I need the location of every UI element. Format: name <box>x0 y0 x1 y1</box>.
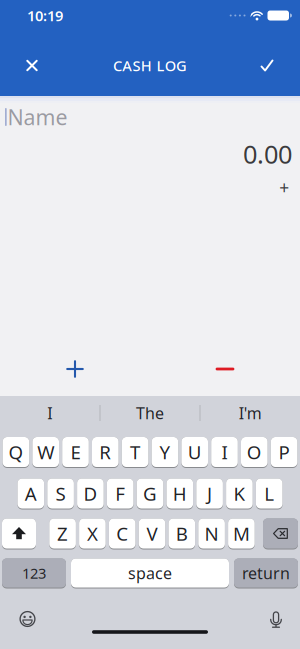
button[interactable]: A <box>17 478 44 509</box>
staticText: L <box>264 481 274 506</box>
staticText: I'm <box>239 402 262 424</box>
button[interactable]: Shift <box>2 518 36 549</box>
button[interactable]: K <box>226 478 253 509</box>
button[interactable]: C <box>109 518 135 549</box>
staticText: Y <box>159 440 170 464</box>
staticText: H <box>173 481 187 506</box>
button[interactable]: Emoji <box>12 604 42 634</box>
button[interactable]: Delete <box>263 518 298 549</box>
staticText: D <box>83 481 97 506</box>
staticText: CASH LOG <box>113 56 187 75</box>
button[interactable]: W <box>32 437 59 468</box>
button[interactable]: R <box>92 437 119 468</box>
button[interactable]: I'm <box>200 396 300 430</box>
staticText: M <box>233 521 250 546</box>
staticText: B <box>176 521 188 546</box>
staticText: T <box>130 440 140 464</box>
staticText: return <box>242 562 290 584</box>
button[interactable]: N <box>198 518 225 549</box>
button[interactable]: P <box>271 437 297 468</box>
staticText: O <box>247 440 262 464</box>
button[interactable]: Save <box>249 43 285 87</box>
button[interactable]: O <box>241 437 268 468</box>
button[interactable]: I <box>211 437 238 468</box>
button[interactable]: S <box>47 478 74 509</box>
staticText: space <box>128 562 172 584</box>
staticText: 123 <box>22 563 46 583</box>
staticText: X <box>87 521 98 546</box>
staticText: Z <box>57 521 68 546</box>
button[interactable]: X <box>79 518 106 549</box>
button[interactable]: H <box>166 478 193 509</box>
staticText: G <box>143 481 157 506</box>
staticText: C <box>116 521 128 546</box>
staticText: V <box>146 521 157 546</box>
button[interactable]: 123 <box>2 558 66 588</box>
button[interactable]: U <box>181 437 208 468</box>
staticText: N <box>205 521 219 546</box>
button[interactable]: J <box>196 478 223 509</box>
staticText: K <box>233 481 245 506</box>
button[interactable]: L <box>256 478 282 509</box>
staticText: R <box>99 440 111 464</box>
staticText: J <box>207 481 212 506</box>
button[interactable]: F <box>107 478 133 509</box>
staticText: E <box>70 440 80 464</box>
button[interactable]: Add amount <box>273 176 295 198</box>
staticText: I <box>47 402 52 424</box>
button[interactable]: The <box>100 396 199 430</box>
button[interactable]: E <box>62 437 89 468</box>
button[interactable]: B <box>168 518 195 549</box>
button[interactable]: Close <box>14 43 50 87</box>
staticText: The <box>136 402 164 424</box>
button[interactable]: V <box>139 518 165 549</box>
button[interactable]: Add income <box>0 339 150 399</box>
button[interactable]: M <box>228 518 255 549</box>
staticText: Q <box>8 440 23 464</box>
staticText: 0.00 <box>243 137 292 171</box>
staticText: Name <box>7 103 67 131</box>
staticText: F <box>115 481 125 506</box>
button[interactable]: Subtract expense <box>150 339 300 399</box>
button[interactable]: Name <box>0 100 300 134</box>
staticText: U <box>188 440 202 464</box>
staticText: P <box>279 440 290 464</box>
staticText: 10:19 <box>27 6 63 25</box>
button[interactable]: D <box>77 478 104 509</box>
staticText: A <box>25 481 37 506</box>
button[interactable]: Dictate <box>263 605 289 635</box>
button[interactable]: space <box>71 558 229 588</box>
button[interactable]: Y <box>152 437 178 468</box>
staticText: S <box>56 481 66 506</box>
button[interactable]: Q <box>3 437 29 468</box>
staticText: I <box>221 440 227 464</box>
button[interactable]: Z <box>49 518 76 549</box>
button[interactable]: return <box>234 558 298 588</box>
staticText: + <box>279 176 289 199</box>
button[interactable]: G <box>137 478 163 509</box>
button[interactable]: T <box>122 437 148 468</box>
staticText: W <box>37 440 54 464</box>
button[interactable]: I <box>0 396 99 430</box>
